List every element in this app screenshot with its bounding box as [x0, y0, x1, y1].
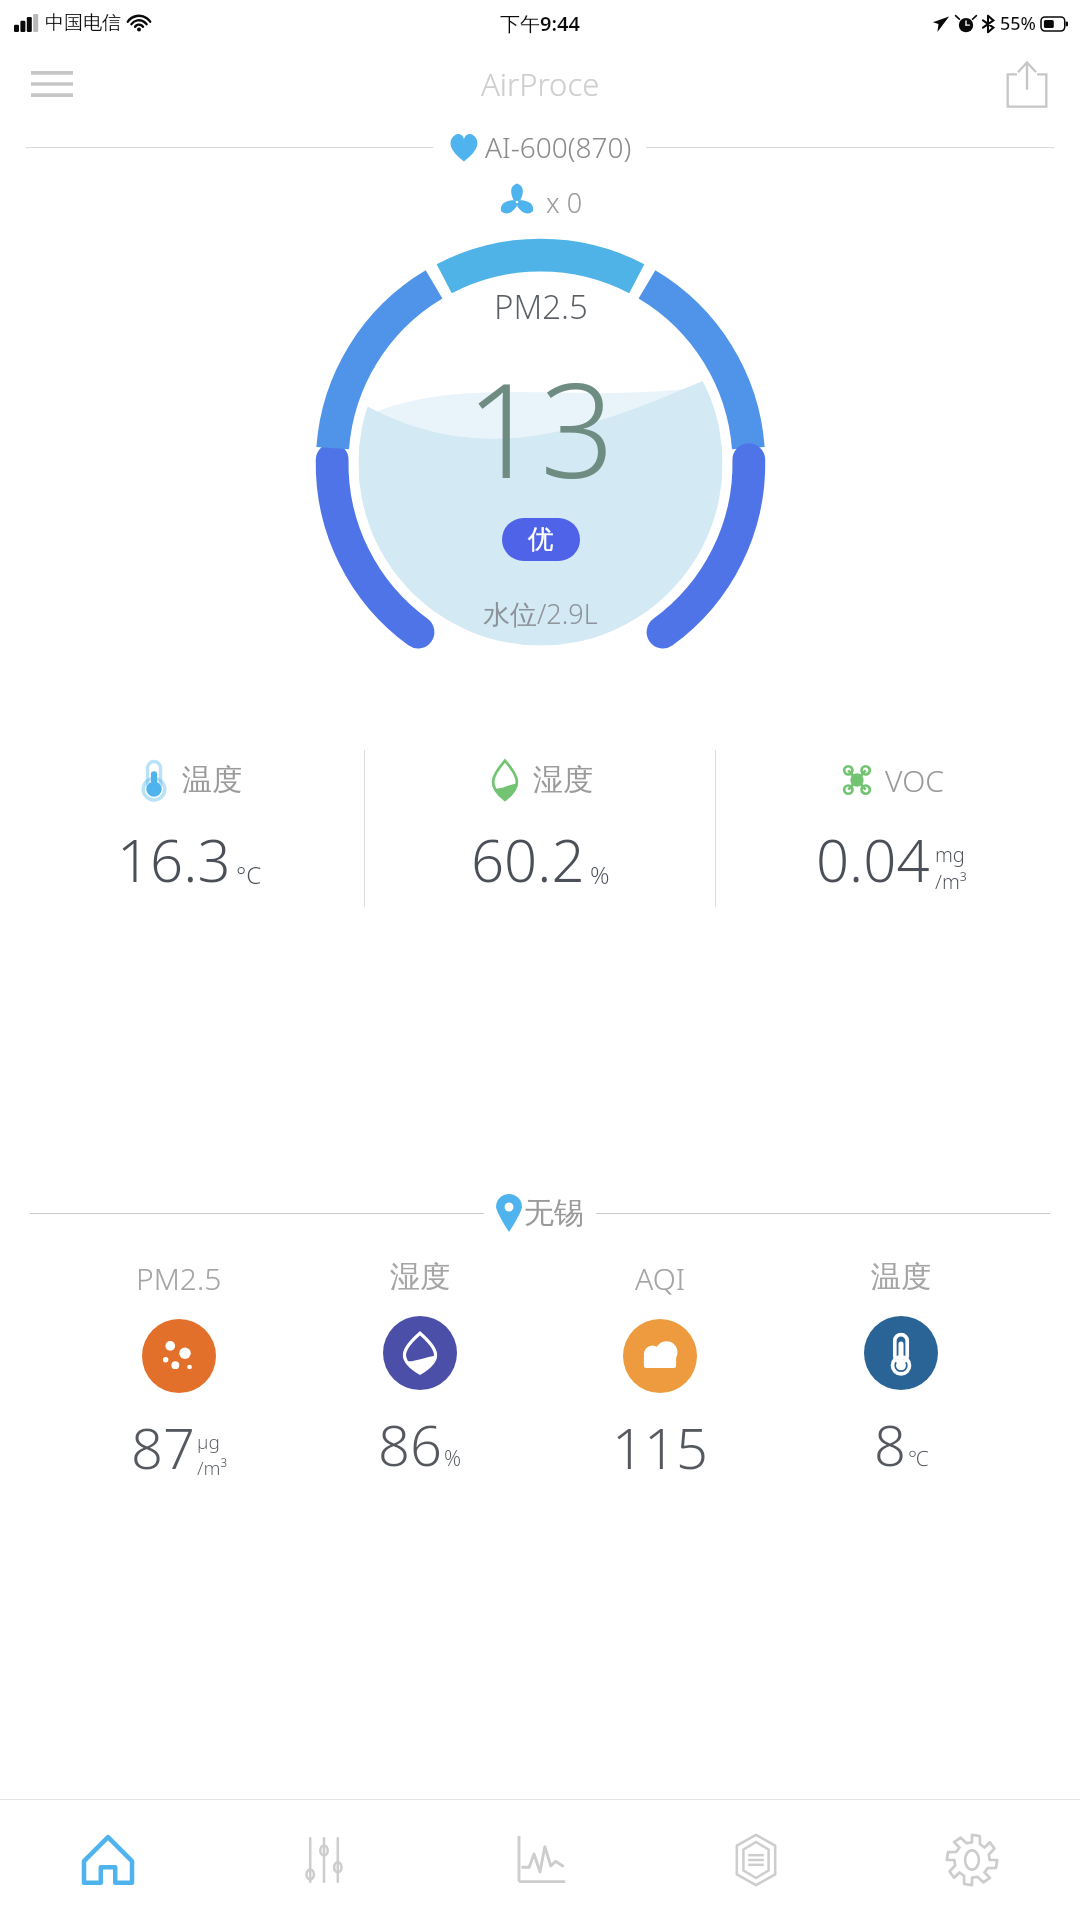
staticText: 水位/2.9L	[483, 595, 598, 632]
staticText: VOC	[885, 760, 944, 801]
button[interactable]: Settings	[864, 1800, 1080, 1920]
staticText: 湿度	[390, 1258, 450, 1296]
staticText: 温度	[182, 761, 242, 799]
button[interactable]: 优	[502, 518, 580, 561]
staticText: %	[590, 858, 610, 891]
staticText: /m³	[935, 868, 967, 895]
staticText: 8	[874, 1406, 906, 1482]
button[interactable]: VOC	[716, 736, 1066, 921]
button[interactable]: Controls	[216, 1800, 432, 1920]
staticText: 55%	[1000, 11, 1036, 36]
staticText: AQI	[635, 1258, 685, 1299]
staticText: AI-600(870)	[485, 128, 632, 166]
button[interactable]: Stats	[432, 1800, 648, 1920]
staticText: PM2.5	[136, 1258, 222, 1299]
button[interactable]: 温度	[821, 1258, 981, 1482]
button[interactable]: PM2.5	[99, 1258, 259, 1485]
staticText: AirProce	[481, 63, 600, 105]
staticText: 下午9:44	[500, 10, 580, 37]
button[interactable]: 温度	[14, 736, 364, 921]
button[interactable]: Home	[0, 1800, 216, 1920]
staticText: 0.04	[816, 820, 930, 899]
staticText: PM2.5	[494, 284, 588, 329]
staticText: 86	[378, 1406, 442, 1482]
staticText: 无锡	[524, 1194, 584, 1232]
staticText: %	[444, 1444, 462, 1473]
staticText: µg	[197, 1429, 220, 1455]
staticText: mg	[935, 841, 965, 868]
staticText: x 0	[546, 184, 583, 221]
button[interactable]: AQI	[580, 1258, 740, 1485]
staticText: 湿度	[533, 761, 593, 799]
button[interactable]: Menu	[24, 56, 80, 112]
staticText: 13	[466, 339, 615, 516]
staticText: 16.3	[117, 820, 231, 899]
staticText: 中国电信	[45, 11, 121, 35]
staticText: /m³	[197, 1455, 228, 1481]
staticText: 87	[131, 1409, 195, 1485]
staticText: 60.2	[471, 820, 585, 899]
button[interactable]: Share	[998, 55, 1056, 113]
staticText: 温度	[871, 1258, 931, 1296]
button[interactable]: 湿度	[365, 736, 715, 921]
button[interactable]: Filter	[648, 1800, 864, 1920]
staticText: ℃	[908, 1444, 929, 1473]
staticText: 115	[612, 1409, 708, 1485]
button[interactable]: 湿度	[340, 1258, 500, 1482]
staticText: °C	[236, 858, 262, 891]
staticText: 优	[528, 523, 554, 556]
